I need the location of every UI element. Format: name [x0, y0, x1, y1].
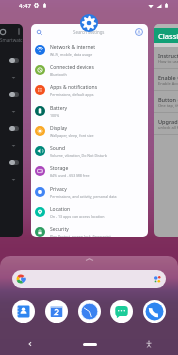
button[interactable]: Home [60, 333, 119, 355]
button[interactable]: Location [35, 202, 148, 222]
button[interactable]: Security [35, 222, 148, 237]
staticText: Enable Accessibility [158, 81, 178, 86]
staticText: Upgrade to Pro [158, 118, 178, 125]
staticText: Network & internet [50, 44, 96, 51]
button[interactable]: Search settings [36, 24, 143, 40]
staticText: Play Protect, screen lock, fingerprint [50, 234, 111, 237]
button[interactable]: Instructions [158, 47, 178, 68]
staticText: How to use [158, 59, 178, 64]
button[interactable]: Storage [35, 161, 148, 181]
staticText: Security [50, 226, 69, 233]
button[interactable]: Battery [35, 101, 148, 121]
button[interactable]: Privacy [35, 182, 148, 202]
button[interactable]: Enable Classic [158, 69, 178, 90]
staticText: Location [50, 206, 71, 213]
staticText: 84% used - 653 MB free [50, 173, 90, 178]
button[interactable]: Back [0, 333, 60, 355]
staticText: Wallpaper, sleep, font size [50, 133, 94, 138]
staticText: Volume, vibration, Do Not Disturb [50, 153, 107, 158]
button[interactable]: Upgrade to Pro [158, 113, 178, 134]
staticText: Permissions, and activity, personal data [50, 194, 117, 199]
staticText: Privacy [50, 186, 67, 193]
button[interactable]: Search settings [31, 24, 148, 237]
button[interactable]: Smartwatch [0, 24, 23, 237]
staticText: Bluetooth [50, 72, 67, 77]
staticText: Button control [158, 96, 178, 103]
other: Settings app [80, 14, 98, 32]
staticText: Battery [50, 105, 68, 112]
button[interactable]: Clock [78, 300, 101, 323]
staticText: Display [50, 125, 68, 132]
staticText: One tap, the menu [158, 103, 178, 108]
button[interactable]: Display [35, 121, 148, 141]
button[interactable]: Messages [110, 300, 133, 323]
button[interactable]: Sound [35, 141, 148, 161]
button[interactable]: Apps & notifications [35, 80, 148, 100]
staticText: Sound [50, 145, 66, 152]
button[interactable]: Accessibility [119, 333, 178, 355]
button[interactable]: Google search [12, 270, 166, 288]
staticText: Permissions, default apps [50, 92, 94, 97]
staticText: Enable Classic [158, 74, 178, 81]
button[interactable]: Contacts [12, 300, 35, 323]
staticText: Connected devices [50, 64, 94, 71]
staticText: 4:47 [19, 2, 31, 10]
staticText: Storage [50, 165, 69, 172]
button[interactable]: Classic [154, 24, 178, 237]
staticText: unlock all features [158, 125, 178, 130]
button[interactable]: Phone [143, 300, 166, 323]
button[interactable]: Calendar [45, 300, 68, 323]
staticText: 100% [50, 113, 60, 118]
button[interactable]: Connected devices [35, 60, 148, 80]
staticText: Smartwatch [0, 37, 23, 43]
staticText: Apps & notifications [50, 84, 98, 91]
staticText: On - 13 apps can access location [50, 214, 105, 219]
staticText: Wi-Fi, mobile, data usage [50, 52, 93, 57]
staticText: Instructions [158, 52, 178, 59]
staticText: Search settings [73, 29, 105, 35]
button[interactable]: Button control [158, 91, 178, 112]
button[interactable]: Network & internet [35, 40, 148, 60]
staticText: Classic [158, 31, 178, 41]
